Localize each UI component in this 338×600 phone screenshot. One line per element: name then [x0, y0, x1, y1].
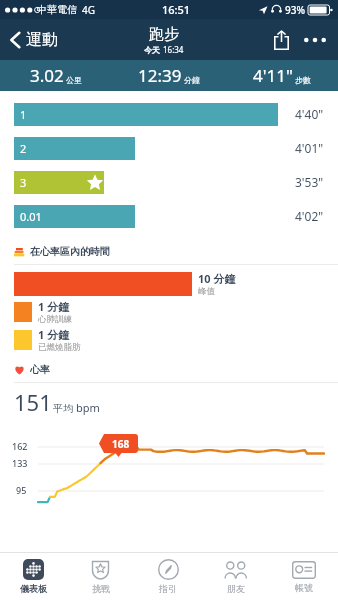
- button[interactable]: 帳號: [270, 553, 338, 600]
- button[interactable]: 1: [0, 97, 338, 131]
- staticText: 2: [20, 141, 27, 156]
- staticText: 平均: [53, 402, 73, 415]
- staticText: 中華電信: [37, 3, 77, 16]
- staticText: 已燃燒脂肪: [38, 342, 81, 353]
- staticText: 心率: [30, 363, 50, 376]
- staticText: 12:39: [138, 64, 182, 87]
- button[interactable]: 指引: [134, 553, 202, 600]
- staticText: 168: [112, 437, 130, 451]
- staticText: 10 分鐘: [198, 271, 236, 286]
- staticText: 1: [20, 107, 27, 122]
- staticText: 1 分鐘: [38, 299, 70, 314]
- button[interactable]: 朋友: [202, 553, 270, 600]
- button[interactable]: 挑戰: [67, 553, 134, 600]
- staticText: 4G: [82, 3, 95, 17]
- staticText: 93%: [285, 3, 305, 17]
- staticText: 公里: [66, 75, 82, 85]
- staticText: 16:34: [163, 44, 184, 55]
- staticText: 分鐘: [184, 75, 200, 85]
- staticText: bpm: [76, 400, 100, 415]
- staticText: 指引: [159, 583, 177, 594]
- staticText: 4'01": [295, 140, 324, 156]
- staticText: 3: [20, 175, 27, 190]
- button[interactable]: 2: [0, 131, 338, 165]
- staticText: 今天: [144, 44, 163, 55]
- button[interactable]: 3: [0, 165, 338, 199]
- staticText: 1 分鐘: [38, 327, 70, 342]
- staticText: 0.01: [20, 209, 42, 224]
- staticText: 峰值: [198, 286, 215, 297]
- staticText: 帳號: [295, 582, 313, 593]
- button[interactable]: Share: [266, 25, 296, 55]
- button[interactable]: 儀表板: [0, 553, 67, 600]
- staticText: 4'02": [295, 208, 324, 224]
- staticText: 4'11": [253, 64, 293, 87]
- staticText: 儀表板: [20, 583, 47, 594]
- staticText: 4'40": [295, 106, 324, 122]
- staticText: 步數: [295, 75, 311, 85]
- staticText: 挑戰: [92, 583, 110, 594]
- staticText: 151: [14, 387, 52, 417]
- staticText: 心肺訓練: [38, 314, 72, 325]
- staticText: 朋友: [227, 583, 245, 594]
- staticText: 3.02: [30, 64, 64, 87]
- button[interactable]: More options: [300, 25, 330, 55]
- button[interactable]: 運動: [6, 26, 62, 54]
- staticText: 3'53": [295, 174, 324, 190]
- staticText: 133: [12, 457, 28, 469]
- staticText: 95: [16, 484, 27, 496]
- staticText: 跑步: [149, 25, 179, 44]
- button[interactable]: 0.01: [0, 199, 338, 233]
- staticText: 162: [12, 440, 28, 452]
- staticText: 16:51: [162, 2, 191, 17]
- staticText: 運動: [26, 30, 58, 50]
- staticText: 在心率區內的時間: [30, 245, 110, 258]
